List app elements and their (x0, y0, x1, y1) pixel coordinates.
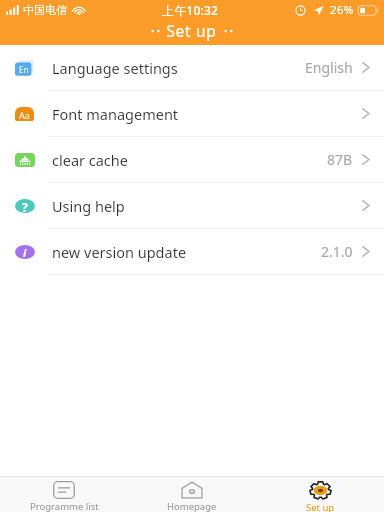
staticText: Set up (166, 20, 217, 41)
button[interactable]: ? (0, 183, 384, 229)
staticText: Programme list (30, 500, 99, 512)
button[interactable]: clear cache (0, 137, 384, 183)
staticText: Set up (306, 501, 335, 512)
staticText: 中国电信 (23, 3, 67, 17)
staticText: 2.1.0 (321, 242, 353, 261)
staticText: clear cache (52, 150, 128, 170)
staticText: En (19, 64, 29, 75)
staticText: Font management (52, 104, 179, 124)
button[interactable]: En (0, 45, 384, 91)
staticText: 26% (330, 2, 354, 18)
button[interactable]: Set up (256, 477, 384, 512)
staticText: Aa (19, 109, 30, 121)
button[interactable]: Programme list (0, 477, 128, 512)
button[interactable]: Aa (0, 91, 384, 137)
button[interactable]: Homepage (128, 477, 256, 512)
staticText: English (305, 58, 353, 77)
staticText: new version update (52, 242, 187, 262)
staticText: 87B (327, 150, 353, 169)
staticText: Using help (52, 196, 125, 216)
button[interactable]: i (0, 229, 384, 275)
staticText: Homepage (167, 500, 217, 512)
staticText: Language settings (52, 58, 178, 78)
staticText: 上午10:32 (162, 2, 219, 18)
staticText: i (23, 245, 27, 259)
staticText: ? (22, 199, 28, 213)
